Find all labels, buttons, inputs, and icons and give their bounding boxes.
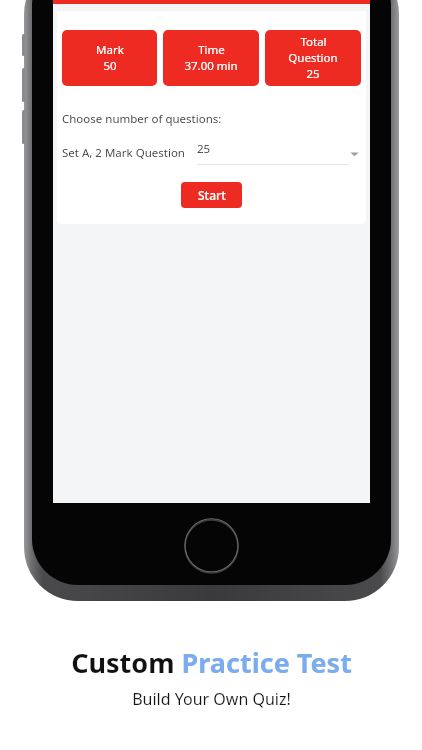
- staticText: Question: [288, 50, 338, 66]
- button[interactable]: Time: [163, 30, 259, 86]
- staticText: Time: [198, 42, 225, 58]
- staticText: Mark: [96, 42, 124, 58]
- staticText: Set A, 2 Mark Question: [62, 145, 185, 161]
- other: Expand dropdown: [349, 148, 360, 159]
- staticText: 37.00 min: [184, 58, 238, 74]
- staticText: Choose number of questions:: [62, 111, 222, 127]
- staticText: 25: [197, 141, 211, 157]
- other: Home: [184, 519, 239, 574]
- button[interactable]: Mark: [62, 30, 157, 86]
- button[interactable]: Total: [265, 30, 361, 86]
- button[interactable]: Start: [181, 182, 242, 208]
- staticText: Build Your Own Quiz!: [132, 688, 291, 710]
- staticText: 50: [103, 58, 117, 74]
- staticText: 25: [306, 66, 320, 82]
- staticText: Start: [198, 187, 226, 203]
- button[interactable]: 25: [197, 141, 360, 165]
- staticText: Total: [300, 34, 327, 50]
- staticText: Custom Practice Test: [71, 644, 352, 681]
